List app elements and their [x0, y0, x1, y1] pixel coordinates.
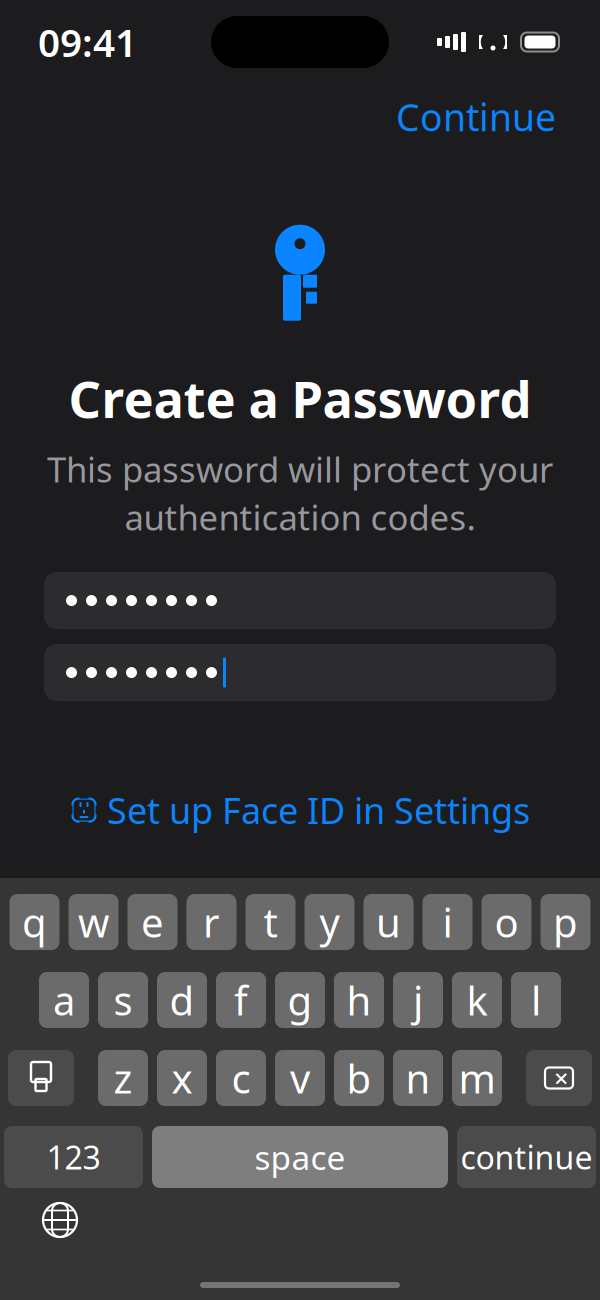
- staticText: s: [113, 973, 132, 1026]
- button[interactable]: 123: [4, 1126, 143, 1188]
- staticText: t: [263, 895, 277, 948]
- staticText: Continue: [396, 92, 556, 142]
- staticText: o: [494, 895, 518, 948]
- button[interactable]: p: [540, 894, 590, 950]
- staticText: k: [466, 973, 487, 1026]
- staticText: c: [231, 1051, 250, 1104]
- button[interactable]: Continue: [382, 84, 570, 150]
- staticText: 123: [46, 1136, 100, 1178]
- button[interactable]: continue: [457, 1126, 596, 1188]
- staticText: Create a Password: [68, 365, 531, 432]
- staticText: u: [376, 895, 401, 948]
- button[interactable]: space: [152, 1126, 448, 1188]
- button[interactable]: Switch keyboard: [38, 1198, 82, 1242]
- button[interactable]: f: [216, 972, 266, 1028]
- button[interactable]: k: [452, 972, 502, 1028]
- button[interactable]: x: [157, 1050, 207, 1106]
- button[interactable]: g: [275, 972, 325, 1028]
- staticText: f: [234, 973, 248, 1026]
- button[interactable]: t: [245, 894, 295, 950]
- button[interactable]: e: [127, 894, 177, 950]
- button[interactable]: d: [157, 972, 207, 1028]
- staticText: z: [113, 1051, 132, 1104]
- staticText: b: [346, 1051, 371, 1104]
- staticText: m: [458, 1051, 495, 1104]
- button[interactable]: w: [68, 894, 118, 950]
- button[interactable]: l: [511, 972, 561, 1028]
- button[interactable]: z: [98, 1050, 148, 1106]
- button[interactable]: o: [481, 894, 531, 950]
- button[interactable]: i: [422, 894, 472, 950]
- staticText: 09:41: [38, 16, 137, 68]
- button[interactable]: Delete: [526, 1050, 592, 1106]
- staticText: n: [405, 1051, 430, 1104]
- button[interactable]: r: [186, 894, 236, 950]
- staticText: ×: [554, 1061, 568, 1095]
- button[interactable]: y: [304, 894, 354, 950]
- button[interactable]: u: [363, 894, 413, 950]
- staticText: a: [53, 973, 75, 1026]
- staticText: i: [442, 895, 452, 948]
- staticText: y: [319, 895, 339, 948]
- button[interactable]: a: [39, 972, 89, 1028]
- staticText: r: [203, 895, 220, 948]
- button[interactable]: c: [216, 1050, 266, 1106]
- button[interactable]: q: [9, 894, 59, 950]
- staticText: q: [22, 895, 47, 948]
- staticText: l: [531, 973, 541, 1026]
- staticText: p: [553, 895, 578, 948]
- staticText: continue: [460, 1136, 592, 1178]
- staticText: d: [169, 973, 194, 1026]
- button[interactable]: b: [334, 1050, 384, 1106]
- staticText: Set up Face ID in Settings: [107, 786, 530, 834]
- staticText: h: [346, 973, 371, 1026]
- button[interactable]: Set up Face ID in Settings: [54, 776, 546, 844]
- button[interactable]: v: [275, 1050, 325, 1106]
- button[interactable]: s: [98, 972, 148, 1028]
- button[interactable]: j: [393, 972, 443, 1028]
- staticText: j: [413, 973, 423, 1026]
- staticText: g: [287, 973, 312, 1026]
- staticText: v: [290, 1051, 310, 1104]
- staticText: e: [141, 895, 164, 948]
- staticText: This password will protect your: [47, 446, 553, 492]
- button[interactable]: m: [452, 1050, 502, 1106]
- button[interactable]: h: [334, 972, 384, 1028]
- staticText: space: [254, 1135, 345, 1179]
- button[interactable]: n: [393, 1050, 443, 1106]
- staticText: x: [171, 1051, 192, 1104]
- staticText: authentication codes.: [124, 494, 475, 540]
- button[interactable]: Shift: [8, 1050, 74, 1106]
- staticText: w: [78, 895, 109, 948]
